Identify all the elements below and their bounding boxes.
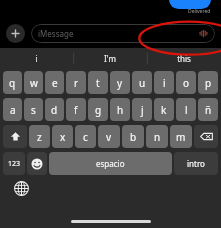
staticText: b [130,130,137,144]
button[interactable]: intro [174,152,218,175]
button[interactable]: a [3,98,22,121]
staticText: k [161,103,167,117]
staticText: q [9,76,16,90]
staticText: a [10,103,16,117]
button[interactable]: 123 [3,152,25,175]
staticText: s [31,103,36,117]
staticText: I'm [104,53,116,64]
staticText: h [117,103,124,117]
button[interactable]: Record audio message [198,28,209,39]
staticText: this [177,53,191,64]
button[interactable]: e [45,71,64,94]
staticText: o [183,76,190,90]
staticText: w [30,76,38,90]
staticText: i [163,76,166,90]
staticText: espacio [96,158,125,169]
button[interactable]: y [110,71,130,94]
button[interactable]: u [132,71,152,94]
button[interactable]: o [176,71,196,94]
staticText: i [35,53,38,64]
button[interactable]: s [24,98,43,121]
button[interactable]: t [88,71,108,94]
button[interactable]: b [122,125,144,148]
button[interactable]: n [146,125,168,148]
button[interactable]: d [45,98,64,121]
button[interactable]: iMessage [31,24,215,43]
button[interactable]: w [24,71,43,94]
button[interactable]: i [154,71,174,94]
staticText: ñ [205,103,212,117]
button[interactable]: I'm [73,48,147,69]
button[interactable]: espacio [49,152,172,175]
staticText: r [74,76,79,90]
button[interactable]: Add attachment [6,24,25,43]
staticText: m [176,130,186,144]
button[interactable]: ñ [198,98,218,121]
button[interactable]: g [88,98,108,121]
staticText: intro [187,158,205,169]
staticText: g [95,103,102,117]
staticText: l [185,103,188,117]
button[interactable]: k [154,98,174,121]
button[interactable]: Delete [194,125,218,148]
button[interactable]: Shift [3,125,27,148]
button[interactable]: Emoji [27,152,47,175]
staticText: f [74,103,78,117]
button[interactable]: p [198,71,218,94]
button[interactable]: i [0,48,73,69]
staticText: Delivered [188,8,211,15]
staticText: z [37,130,42,144]
staticText: n [154,130,161,144]
button[interactable]: m [170,125,192,148]
button[interactable]: l [176,98,196,121]
button[interactable]: j [132,98,152,121]
button[interactable]: this [147,48,221,69]
staticText: p [205,76,212,90]
staticText: x [60,130,66,144]
button[interactable]: v [98,125,120,148]
staticText: t [96,76,100,90]
button[interactable]: r [66,71,86,94]
button[interactable]: f [66,98,86,121]
button[interactable]: h [110,98,130,121]
staticText: c [83,130,88,144]
staticText: e [52,76,58,90]
button[interactable]: x [52,125,73,148]
button[interactable]: q [3,71,22,94]
button[interactable]: Change keyboard language [13,180,29,196]
staticText: j [141,103,144,117]
button[interactable]: z [29,125,50,148]
staticText: u [139,76,146,90]
staticText: y [117,76,123,90]
staticText: 123 [8,159,21,169]
staticText: iMessage [38,28,74,39]
staticText: d [51,103,58,117]
staticText: v [106,130,112,144]
button[interactable]: c [75,125,96,148]
